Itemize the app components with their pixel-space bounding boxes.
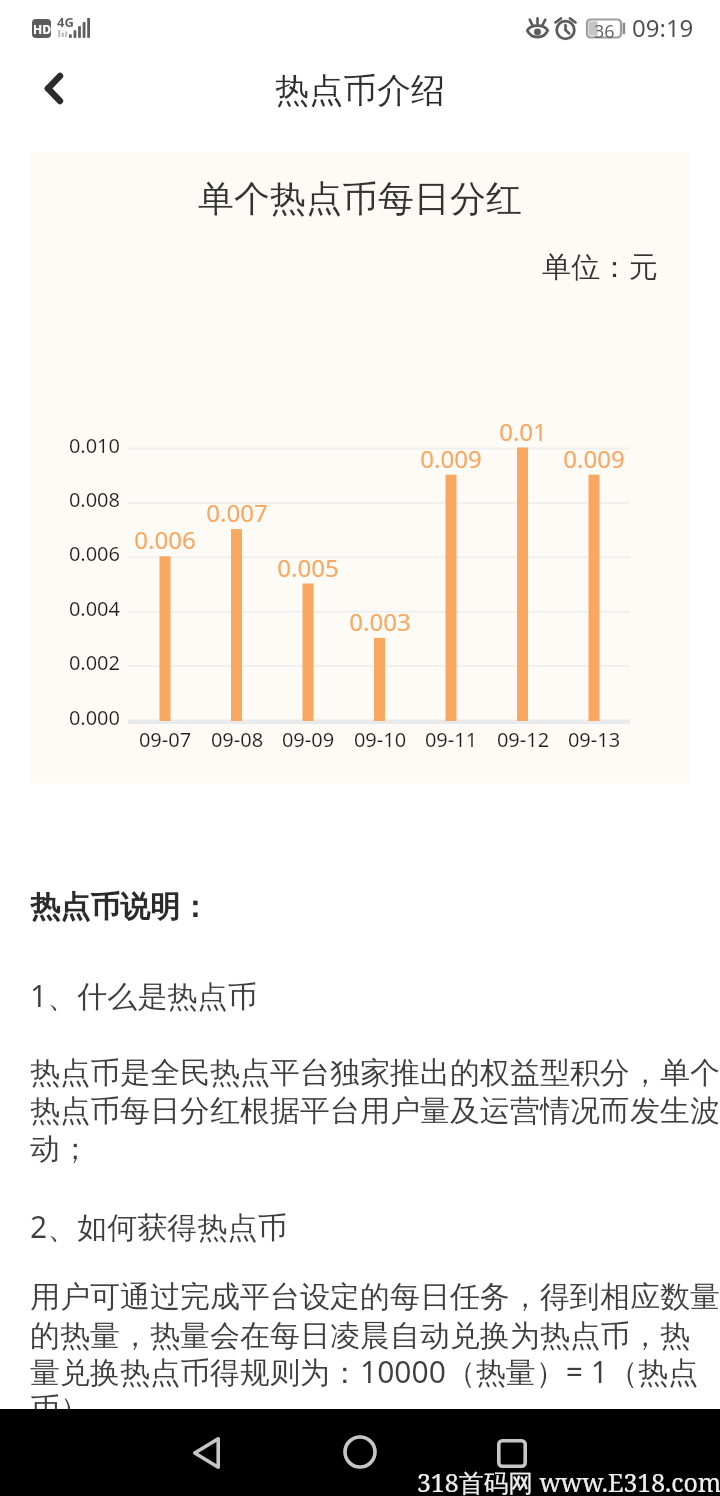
staticText: 4G <box>57 13 74 31</box>
staticText: 0.004 <box>30 595 120 622</box>
staticText: 09:19 <box>632 11 694 44</box>
staticText: 0.01 <box>478 415 568 448</box>
staticText: 用户可通过完成平台设定的每日任务，得到相应数量 <box>30 1278 720 1316</box>
button[interactable]: Home <box>330 1422 390 1482</box>
staticText: 0.007 <box>192 496 282 529</box>
staticText: 2、如何获得热点币 <box>30 1206 288 1247</box>
staticText: 36 <box>594 19 615 38</box>
staticText: 1、什么是热点币 <box>30 975 258 1016</box>
staticText: 币） <box>30 1390 720 1428</box>
staticText: 的热量，热量会在每日凌晨自动兑换为热点币，热 <box>30 1317 720 1355</box>
staticText: 0.009 <box>549 442 639 475</box>
button[interactable]: Back <box>21 55 87 121</box>
staticText: 单个热点币每日分红 <box>198 176 522 221</box>
staticText: 0.003 <box>335 605 425 638</box>
staticText: 09-09 <box>263 726 353 753</box>
staticText: 318首码网 www.E318.com <box>417 1465 720 1496</box>
staticText: 热点币介绍 <box>275 69 445 112</box>
staticText: 0.000 <box>30 704 120 731</box>
staticText: 热点币说明： <box>30 888 210 926</box>
button[interactable]: Recent apps <box>482 1423 542 1483</box>
staticText: 0.006 <box>30 540 120 567</box>
staticText: 09-13 <box>549 726 639 753</box>
staticText: 0.002 <box>30 649 120 676</box>
staticText: 0.009 <box>406 442 496 475</box>
staticText: 量兑换热点币得规则为：10000（热量）= 1（热点 <box>30 1351 720 1392</box>
staticText: 0.005 <box>263 551 353 584</box>
staticText: 09-08 <box>192 726 282 753</box>
staticText: 09-11 <box>406 726 496 753</box>
staticText: 09-07 <box>120 726 210 753</box>
staticText: 0.010 <box>30 432 120 459</box>
staticText: 0.008 <box>30 486 120 513</box>
staticText: 09-12 <box>478 726 568 753</box>
staticText: 动； <box>30 1130 720 1168</box>
staticText: 单位：元 <box>542 249 658 286</box>
button[interactable]: Back <box>176 1423 236 1483</box>
staticText: 热点币每日分红根据平台用户量及运营情况而发生波 <box>30 1092 720 1130</box>
staticText: 0.006 <box>120 523 210 556</box>
staticText: 09-10 <box>335 726 425 753</box>
staticText: 热点币是全民热点平台独家推出的权益型积分，单个 <box>30 1054 720 1092</box>
staticText: HD <box>33 21 51 37</box>
